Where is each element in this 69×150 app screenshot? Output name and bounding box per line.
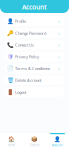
staticText: Home bbox=[7, 143, 15, 147]
button[interactable]: 📞 bbox=[4, 40, 65, 50]
staticText: Privacy Policy bbox=[15, 54, 39, 59]
button[interactable]: 🗑 bbox=[4, 75, 65, 85]
staticText: Account bbox=[22, 3, 47, 11]
staticText: › bbox=[58, 65, 60, 72]
button[interactable]: 🚪 bbox=[4, 87, 65, 97]
staticText: Terms & Conditions bbox=[15, 66, 50, 71]
staticText: 📞 bbox=[7, 42, 14, 48]
staticText: Change Password bbox=[15, 30, 46, 36]
staticText: 🏠 bbox=[8, 137, 15, 143]
staticText: Orders bbox=[30, 143, 39, 147]
button[interactable]: 🔑 bbox=[4, 28, 65, 38]
button[interactable]: 👤 bbox=[4, 16, 65, 26]
staticText: 🗑 bbox=[7, 77, 14, 83]
staticText: › bbox=[58, 30, 60, 37]
button[interactable]: Home bbox=[0, 133, 23, 150]
staticText: 👤 bbox=[54, 137, 61, 143]
button[interactable]: 📄 bbox=[4, 64, 65, 73]
staticText: 🛡 bbox=[7, 54, 14, 60]
button[interactable]: Account bbox=[46, 133, 69, 150]
staticText: › bbox=[58, 18, 60, 25]
staticText: Profile bbox=[15, 19, 26, 24]
staticText: Contact Us bbox=[15, 42, 34, 47]
staticText: Account bbox=[52, 143, 63, 147]
staticText: 👤 bbox=[7, 18, 14, 24]
staticText: Logout bbox=[15, 89, 26, 95]
button[interactable]: Orders bbox=[23, 133, 46, 150]
staticText: › bbox=[58, 41, 60, 48]
staticText: 📄 bbox=[7, 65, 14, 72]
staticText: 🔑 bbox=[7, 30, 14, 36]
staticText: 🚪 bbox=[7, 89, 14, 95]
staticText: Delete Account bbox=[15, 78, 41, 83]
button[interactable]: 🛡 bbox=[4, 52, 65, 61]
staticText: › bbox=[58, 53, 60, 60]
staticText: 📦 bbox=[31, 137, 38, 143]
